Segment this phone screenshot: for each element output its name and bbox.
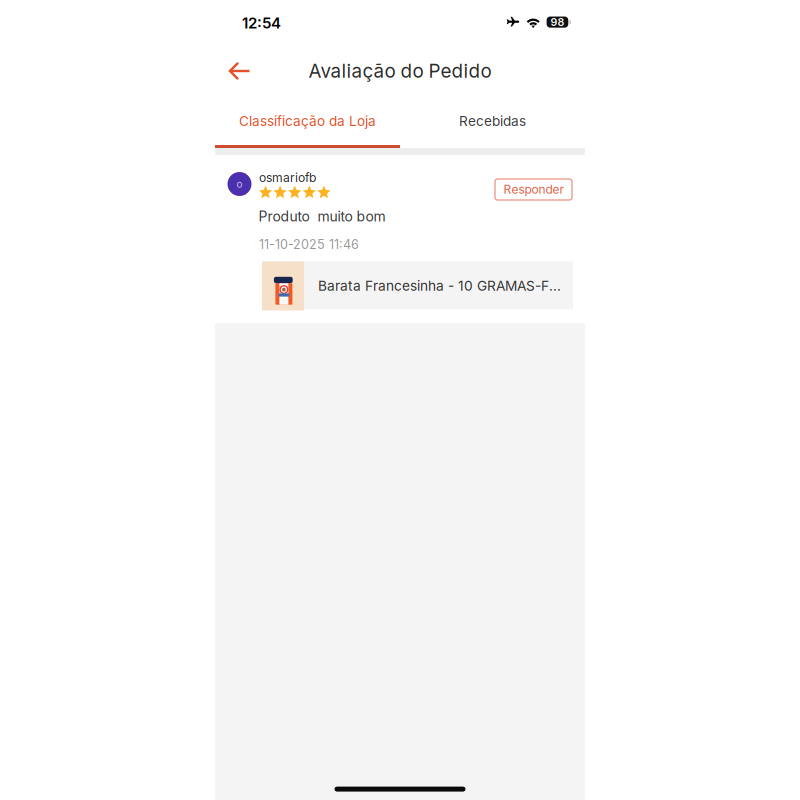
staticText: 98 — [550, 16, 564, 28]
button[interactable]: Classificação da Loja — [215, 97, 400, 145]
button[interactable]: Barata Francesinha - 10 GRAMAS-F... — [262, 262, 573, 310]
staticText: Barata Francesinha - 10 GRAMAS-F... — [318, 277, 561, 294]
staticText: o — [236, 178, 242, 190]
button[interactable]: Recebidas — [400, 97, 585, 145]
staticText: Classificação da Loja — [239, 113, 376, 129]
button[interactable]: Voltar — [217, 49, 261, 93]
staticText: 12:54 — [242, 14, 281, 32]
staticText: osmariofb — [259, 170, 316, 185]
staticText: 11-10-2025 11:46 — [259, 237, 359, 252]
staticText: Produto muito bom — [258, 208, 385, 225]
staticText: Responder — [503, 182, 563, 197]
button[interactable]: Responder — [495, 179, 572, 200]
staticText: Recebidas — [459, 113, 526, 129]
staticText: Avaliação do Pedido — [308, 60, 491, 82]
